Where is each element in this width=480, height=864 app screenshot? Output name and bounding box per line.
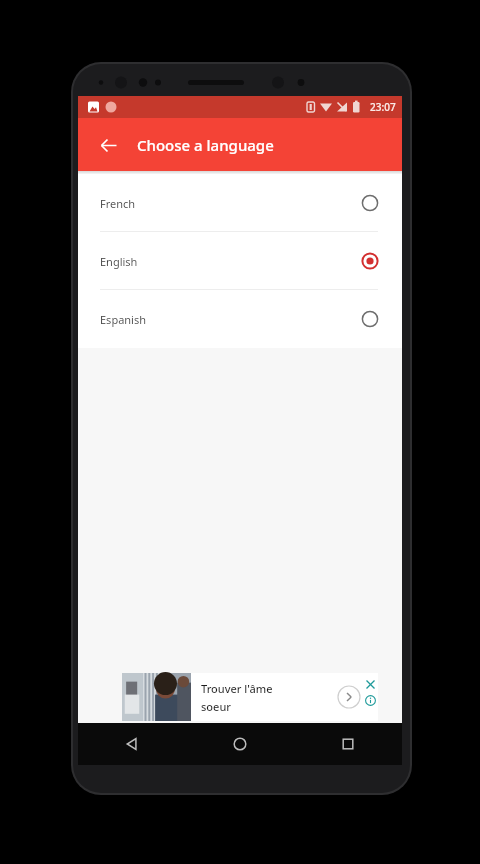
button[interactable]: Close ad	[363, 677, 377, 691]
button[interactable]: Back	[78, 723, 186, 765]
staticText: Espanish	[100, 312, 147, 327]
button[interactable]: Home	[186, 723, 294, 765]
staticText: French	[100, 196, 136, 211]
button[interactable]: Open ad	[336, 684, 362, 710]
staticText: English	[100, 254, 138, 269]
button[interactable]: Back	[88, 125, 128, 165]
button[interactable]: Trouver l'âme	[122, 673, 378, 721]
staticText: 23:07	[370, 100, 396, 114]
button[interactable]: Espanish	[78, 290, 402, 348]
button[interactable]: French	[78, 174, 402, 232]
button[interactable]: Recent apps	[294, 723, 402, 765]
staticText: Choose a language	[137, 135, 274, 155]
staticText: soeur	[201, 699, 231, 714]
staticText: Trouver l'âme	[201, 681, 273, 696]
button[interactable]: English	[78, 232, 402, 290]
button[interactable]: Ad information	[363, 693, 377, 707]
